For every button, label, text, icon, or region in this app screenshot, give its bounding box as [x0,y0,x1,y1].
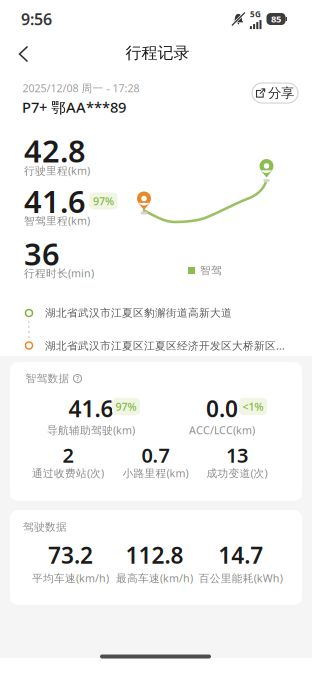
staticText: 成功变道(次) [206,466,267,480]
staticText: 湖北省武汉市江夏区江夏区经济开发区大桥新区... [45,338,285,353]
staticText: 36 [24,233,60,274]
staticText: 41.6 [24,181,86,221]
staticText: 2025/12/08 周一 - 17:28 [22,81,139,95]
staticText: ? [76,374,79,383]
staticText: 行程时长(min) [24,266,94,280]
staticText: 导航辅助驾驶(km) [47,423,135,437]
staticText: 0.7 [141,442,169,468]
staticText: 小路里程(km) [122,466,188,480]
staticText: 42.8 [24,130,86,171]
button[interactable]: 分享 [252,83,298,103]
staticText: 行驶里程(km) [24,163,90,178]
button[interactable]: 智驾数据说明 [72,373,82,383]
staticText: 13 [226,442,248,468]
staticText: 分享 [268,85,294,101]
staticText: 41.6 [68,393,113,423]
staticText: <1% [242,399,263,414]
button[interactable]: Back [11,40,35,67]
staticText: 最高车速(km/h) [116,571,193,585]
staticText: 百公里能耗(kWh) [199,571,283,585]
staticText: 0.0 [206,393,238,423]
staticText: 行程记录 [125,43,189,63]
staticText: 97% [93,194,114,208]
staticText: 9:56 [21,8,52,30]
staticText: 智驾里程(km) [24,213,90,228]
staticText: 112.8 [125,540,183,570]
staticText: 73.2 [48,540,93,570]
staticText: 智驾数据 [25,372,69,385]
staticText: 97% [115,399,136,414]
staticText: 2 [62,442,73,468]
staticText: 驾驶数据 [23,520,67,533]
staticText: 湖北省武汉市江夏区豹澥街道高新大道 [45,306,232,319]
staticText: 5G [250,9,261,19]
staticText: 85 [271,13,281,25]
staticText: ACC/LCC(km) [189,423,255,437]
staticText: P7+ 鄂AA***89 [22,97,126,117]
staticText: 平均车速(km/h) [32,571,109,585]
staticText: 14.7 [218,540,263,570]
staticText: 通过收费站(次) [32,466,104,480]
staticText: 智驾 [200,264,222,277]
